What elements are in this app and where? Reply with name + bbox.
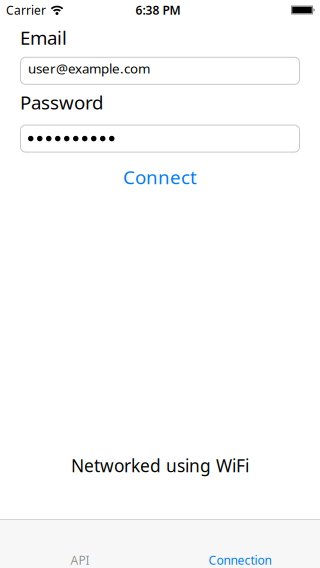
button[interactable]: user@example.com — [20, 57, 300, 85]
staticText: Carrier — [6, 2, 46, 18]
staticText: Connect — [123, 165, 197, 189]
staticText: API — [70, 552, 89, 568]
button[interactable]: API — [0, 519, 160, 568]
staticText: Connection — [208, 552, 271, 568]
staticText: 6:38 PM — [135, 2, 180, 18]
button[interactable]: Connect — [123, 165, 197, 189]
button[interactable]: Password — [20, 125, 300, 153]
staticText: user@example.com — [28, 59, 150, 77]
staticText: Password — [20, 90, 103, 115]
staticText: Networked using WiFi — [71, 454, 249, 477]
button[interactable]: Connection — [160, 519, 320, 568]
staticText: Email — [20, 25, 67, 50]
